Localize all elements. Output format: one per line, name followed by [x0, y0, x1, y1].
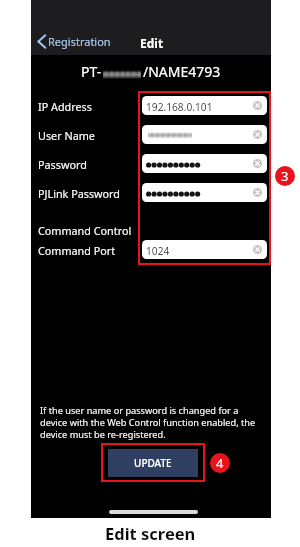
staticText: If the user name or password is changed … — [40, 404, 239, 417]
staticText: Registration — [48, 34, 111, 49]
button[interactable]: 192.168.0.101 — [142, 96, 267, 115]
button[interactable]: Clear text — [253, 130, 262, 139]
staticText: Command Port — [38, 243, 116, 258]
staticText: Password — [38, 157, 87, 172]
staticText: User Name — [38, 128, 95, 143]
button[interactable]: Clear text — [253, 101, 262, 110]
staticText: Edit screen — [105, 522, 196, 544]
button[interactable]: Clear text — [142, 183, 267, 202]
staticText: 3 — [281, 167, 289, 185]
staticText: 4 — [216, 454, 224, 472]
staticText: IP Address — [38, 99, 92, 114]
button[interactable]: 1024 — [142, 240, 267, 259]
staticText: 192.168.0.101 — [146, 100, 213, 114]
button[interactable]: Clear text — [142, 154, 267, 173]
staticText: /NAME4793 — [143, 62, 221, 81]
staticText: device must be re-registered. — [40, 428, 166, 441]
staticText: PT- — [81, 62, 102, 81]
staticText: device with the Web Control function ena… — [40, 416, 256, 429]
button[interactable]: UPDATE — [108, 449, 198, 477]
button[interactable]: Clear text — [253, 188, 262, 197]
button[interactable]: Registration — [34, 31, 115, 52]
button[interactable]: Clear text — [253, 159, 262, 168]
staticText: Command Control — [38, 223, 132, 238]
button[interactable]: Clear text — [142, 125, 267, 144]
staticText: PJLink Password — [38, 186, 121, 201]
staticText: Edit — [140, 35, 164, 51]
button[interactable]: Clear text — [253, 245, 262, 254]
staticText: 1024 — [146, 244, 170, 258]
staticText: UPDATE — [134, 456, 172, 470]
